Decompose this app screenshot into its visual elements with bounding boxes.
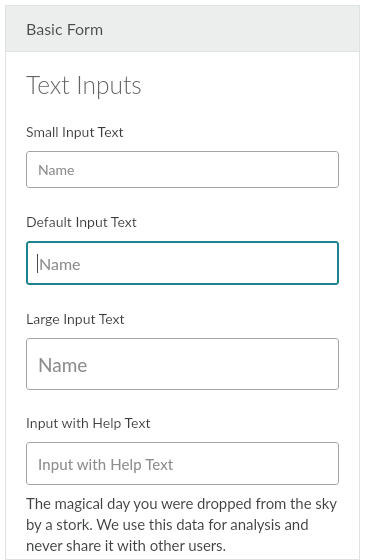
staticText: Text Inputs: [26, 70, 142, 99]
staticText: Default Input Text: [26, 213, 137, 230]
staticText: Large Input Text: [26, 310, 125, 327]
staticText: Basic Form: [26, 19, 104, 38]
staticText: Small Input Text: [26, 123, 124, 140]
button[interactable]: Input with Help Text: [26, 442, 339, 485]
staticText: Input with Help Text: [38, 455, 174, 473]
button[interactable]: Basic Form: [5, 5, 360, 51]
staticText: Name: [38, 353, 88, 376]
button[interactable]: Default Input Text: [26, 241, 339, 285]
button[interactable]: Large Input Text: [26, 338, 339, 390]
staticText: Name: [39, 254, 81, 273]
button[interactable]: Small Input Text: [26, 151, 339, 188]
staticText: The magical day you were dropped from th…: [26, 494, 339, 554]
staticText: Input with Help Text: [26, 414, 151, 431]
staticText: Name: [38, 161, 75, 178]
